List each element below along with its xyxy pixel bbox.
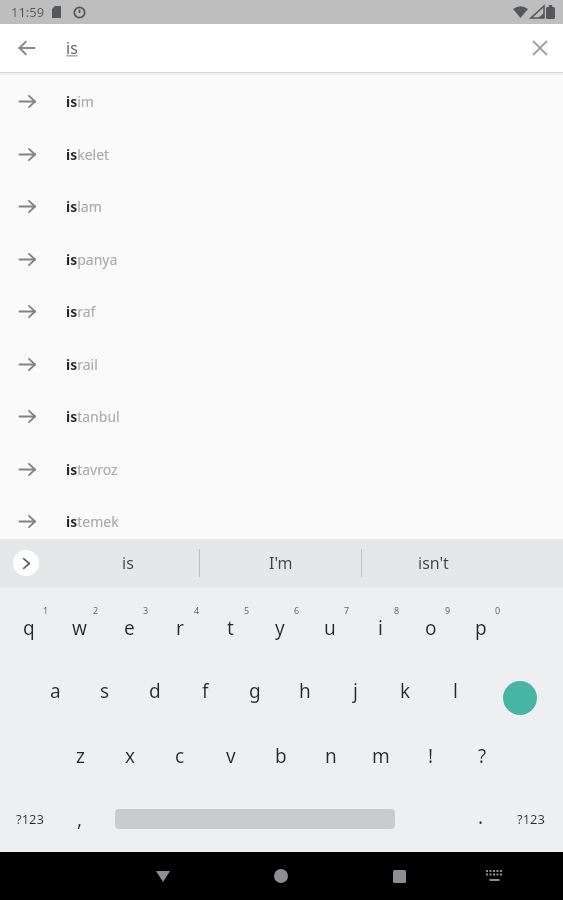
button[interactable]: istemek — [0, 495, 563, 547]
staticText: isim — [66, 92, 94, 111]
staticText: c — [175, 743, 185, 769]
staticText: I'm — [269, 552, 293, 574]
staticText: , — [77, 806, 83, 832]
staticText: t — [227, 615, 234, 641]
staticText: v — [226, 743, 236, 769]
button[interactable]: israf — [0, 285, 563, 337]
staticText: is — [122, 552, 134, 574]
button[interactable]: ! — [408, 728, 454, 784]
button[interactable]: x — [107, 728, 153, 784]
staticText: israf — [66, 302, 96, 321]
staticText: ?123 — [16, 810, 44, 828]
staticText: n — [325, 743, 337, 769]
staticText: iskelet — [66, 145, 110, 164]
staticText: 7 — [344, 604, 350, 616]
staticText: ! — [428, 743, 434, 769]
staticText: 3 — [143, 604, 149, 616]
button[interactable]: ? — [459, 728, 505, 784]
button[interactable]: h — [282, 663, 328, 719]
button[interactable] — [263, 858, 299, 894]
button[interactable]: . — [461, 792, 501, 842]
staticText: k — [400, 678, 411, 704]
button[interactable]: v — [208, 728, 254, 784]
staticText: 2 — [93, 604, 99, 616]
staticText: ispanya — [66, 250, 118, 269]
button[interactable]: n — [308, 728, 354, 784]
button[interactable]: ?123 — [5, 794, 55, 844]
staticText: f — [202, 678, 209, 704]
button[interactable]: islam — [0, 180, 563, 232]
button[interactable]: t — [207, 600, 253, 656]
button[interactable]: j — [332, 663, 378, 719]
button[interactable]: b — [258, 728, 304, 784]
button[interactable]: p — [458, 600, 504, 656]
staticText: p — [475, 615, 487, 641]
button[interactable]: g — [232, 663, 278, 719]
staticText: m — [372, 743, 390, 769]
button[interactable]: iskelet — [0, 128, 563, 180]
button[interactable]: k — [382, 663, 428, 719]
staticText: w — [72, 615, 87, 641]
button[interactable]: I'm — [211, 539, 351, 587]
staticText: e — [124, 615, 135, 641]
staticText: istemek — [66, 512, 119, 531]
staticText: ? — [478, 743, 487, 769]
button[interactable] — [8, 29, 46, 67]
staticText: 9 — [445, 604, 451, 616]
button[interactable]: e — [106, 600, 152, 656]
staticText: x — [125, 743, 136, 769]
staticText: i — [378, 615, 383, 641]
button[interactable]: ?123 — [506, 794, 556, 844]
button[interactable]: q — [6, 600, 52, 656]
staticText: d — [149, 678, 161, 704]
button[interactable] — [381, 858, 417, 894]
staticText: r — [176, 615, 184, 641]
staticText: a — [50, 678, 61, 704]
staticText: j — [353, 678, 358, 704]
button[interactable] — [13, 550, 39, 576]
button[interactable] — [476, 858, 512, 894]
staticText: q — [23, 615, 35, 641]
staticText: l — [453, 678, 458, 704]
staticText: 1 — [43, 604, 49, 616]
staticText: 11:59 — [11, 3, 45, 21]
staticText: israil — [66, 355, 98, 374]
staticText: istavroz — [66, 460, 118, 479]
button[interactable]: istavroz — [0, 443, 563, 495]
staticText: 6 — [294, 604, 300, 616]
staticText: h — [299, 678, 311, 704]
button[interactable]: y — [257, 600, 303, 656]
button[interactable]: l — [432, 663, 478, 719]
staticText: is — [66, 37, 78, 59]
button[interactable]: istanbul — [0, 390, 563, 442]
button[interactable]: is — [58, 539, 198, 587]
button[interactable]: isn't — [363, 539, 503, 587]
button[interactable]: f — [182, 663, 228, 719]
button[interactable]: u — [307, 600, 353, 656]
button[interactable]: israil — [0, 338, 563, 390]
button[interactable] — [521, 29, 559, 67]
button[interactable]: a — [32, 663, 78, 719]
button[interactable]: s — [82, 663, 128, 719]
button[interactable]: , — [60, 794, 100, 844]
button[interactable]: o — [408, 600, 454, 656]
staticText: g — [249, 678, 261, 704]
button[interactable]: i — [357, 600, 403, 656]
button[interactable]: z — [57, 728, 103, 784]
staticText: u — [324, 615, 336, 641]
staticText: . — [478, 804, 484, 830]
button[interactable]: m — [358, 728, 404, 784]
button[interactable] — [503, 681, 537, 715]
staticText: istanbul — [66, 407, 120, 426]
button[interactable]: d — [132, 663, 178, 719]
button[interactable]: ispanya — [0, 233, 563, 285]
button[interactable]: w — [56, 600, 102, 656]
staticText: s — [100, 678, 110, 704]
staticText: isn't — [418, 552, 449, 574]
button[interactable]: r — [157, 600, 203, 656]
button[interactable]: isim — [0, 75, 563, 127]
staticText: islam — [66, 197, 102, 216]
button[interactable]: c — [157, 728, 203, 784]
button[interactable] — [145, 858, 181, 894]
